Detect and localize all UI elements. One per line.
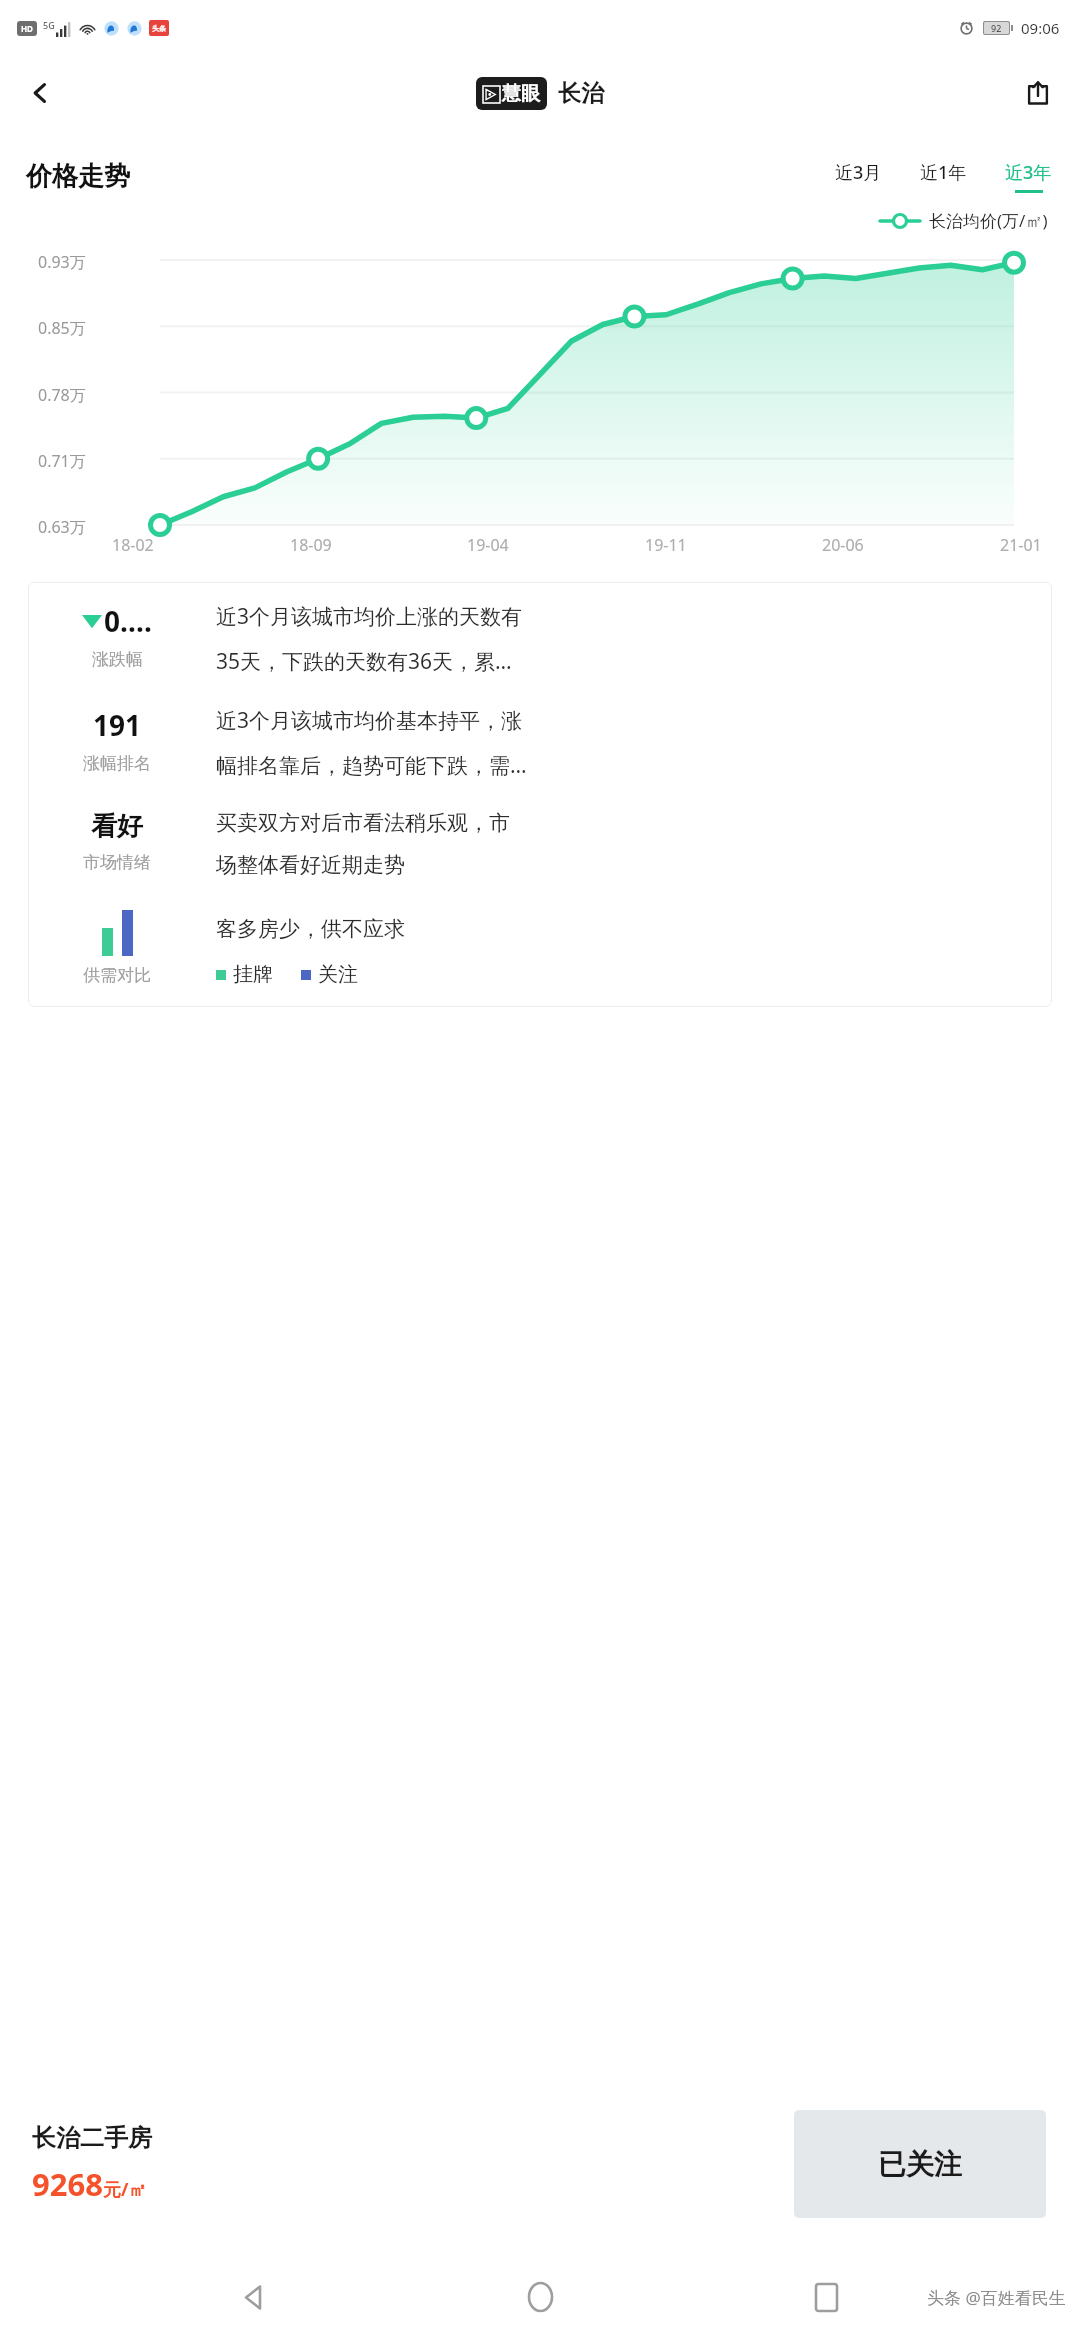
staticText: 长治 [558,79,604,108]
staticText: 92 [991,22,1002,34]
staticText: 9268 [32,2163,103,2205]
staticText: 19-04 [467,534,529,556]
staticText: 长治均价(万/㎡) [929,209,1048,232]
staticText: 涨幅排名 [83,753,151,774]
button[interactable]: Back [12,65,68,121]
staticText: 近3个月该城市均价基本持平，涨 [216,706,523,735]
button[interactable]: 近3月 [833,158,884,195]
staticText: 0.63万 [38,516,86,538]
staticText: HD [21,23,33,34]
staticText: 近1年 [920,160,967,185]
staticText: 慧眼 [502,82,540,106]
staticText: 供需对比 [83,965,151,986]
staticText: 客多房少，供不应求 [216,916,405,942]
staticText: 0…. [104,602,152,640]
button[interactable]: Back [222,2265,286,2329]
staticText: 18-09 [290,534,352,556]
staticText: 买卖双方对后市看法稍乐观，市 [216,810,510,836]
button[interactable]: 近3年 [1003,158,1054,195]
button[interactable]: Recent apps [794,2265,858,2329]
staticText: 涨跌幅 [92,649,143,670]
staticText: 近3个月该城市均价上涨的天数有 [216,602,523,631]
button[interactable]: 已关注 [794,2110,1046,2218]
staticText: 21-01 [1000,534,1062,556]
button[interactable]: Home [508,2265,572,2329]
staticText: 关注 [318,962,358,987]
staticText: 0.78万 [38,384,86,406]
staticText: 头条 @百姓看民生 [927,2286,1066,2309]
staticText: 0.71万 [38,450,86,472]
staticText: 18-02 [112,534,174,556]
staticText: 幅排名靠后，趋势可能下跌，需… [216,751,527,780]
staticText: 已关注 [878,2147,962,2182]
staticText: 191 [93,706,142,744]
staticText: 头条 [152,24,166,33]
staticText: 20-06 [822,534,884,556]
staticText: 看好 [91,810,143,843]
staticText: 35天，下跌的天数有36天，累… [216,647,512,676]
button[interactable]: Share [1010,65,1066,121]
staticText: 09:06 [1021,18,1060,38]
staticText: 市场情绪 [83,852,151,873]
staticText: 5G [43,19,55,31]
staticText: 元/㎡ [103,2177,147,2202]
staticText: 19-11 [645,534,707,556]
button[interactable]: 近1年 [918,158,969,195]
staticText: 挂牌 [233,962,273,987]
staticText: 场整体看好近期走势 [216,852,405,878]
staticText: 0.93万 [38,251,86,273]
staticText: 近3月 [835,160,882,185]
staticText: 0.85万 [38,317,86,339]
staticText: 长治二手房 [32,2123,152,2153]
staticText: 价格走势 [26,160,130,193]
staticText: 近3年 [1005,160,1052,185]
